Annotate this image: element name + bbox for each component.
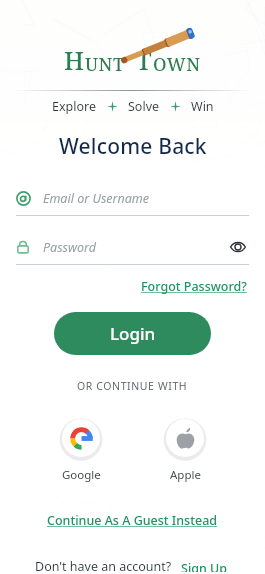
staticText: Apple (170, 467, 201, 483)
staticText: Continue As A Guest Instead (47, 512, 218, 529)
button[interactable]: Apple (161, 414, 209, 485)
staticText: Login (110, 322, 156, 345)
staticText: Solve (128, 98, 160, 115)
staticText: OWN (153, 52, 201, 77)
staticText: Sign Up (181, 560, 228, 572)
staticText: Google (62, 467, 101, 483)
staticText: H (64, 43, 85, 77)
staticText: Welcome Back (59, 132, 207, 161)
button[interactable]: Login (54, 312, 211, 355)
button[interactable]: Google (57, 414, 105, 485)
staticText: OR CONTINUE WITH (77, 379, 188, 393)
button[interactable]: Sign Up (179, 558, 230, 574)
staticText: T (136, 43, 153, 77)
staticText: Email or Username (43, 190, 150, 207)
button[interactable]: Continue As A Guest Instead (41, 509, 224, 532)
button[interactable]: Forgot Password? (139, 276, 249, 297)
staticText: Win (191, 98, 214, 115)
staticText: Password (43, 239, 97, 256)
button[interactable]: Password (16, 234, 249, 260)
button[interactable]: Show password (227, 236, 249, 258)
staticText: UNT (85, 52, 125, 77)
button[interactable]: Email or Username (16, 185, 249, 216)
staticText: Forgot Password? (141, 278, 247, 295)
staticText: Don't have an account? (35, 558, 172, 574)
staticText: Explore (52, 98, 97, 115)
